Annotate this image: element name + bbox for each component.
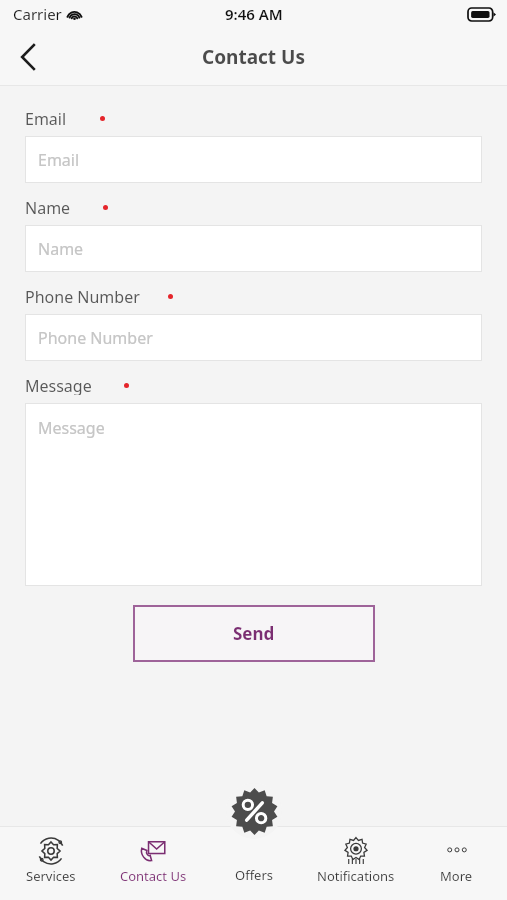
button[interactable]: Services <box>0 837 102 900</box>
button[interactable]: Back <box>0 29 56 85</box>
staticText: Message <box>25 375 92 395</box>
button[interactable]: Message <box>25 403 482 586</box>
staticText: Name <box>25 197 71 217</box>
staticText: Name <box>38 238 84 260</box>
button[interactable]: More <box>406 837 507 900</box>
staticText: Offers <box>235 866 274 884</box>
staticText: Message <box>38 417 105 439</box>
button[interactable]: Phone Number <box>25 314 482 361</box>
button[interactable]: Offers <box>204 837 305 900</box>
button[interactable]: Send <box>133 605 375 662</box>
staticText: Carrier <box>13 4 62 24</box>
staticText: 9:46 AM <box>225 4 283 24</box>
staticText: Email <box>25 108 67 128</box>
staticText: Phone Number <box>38 327 153 349</box>
staticText: More <box>440 867 473 885</box>
button[interactable]: Email <box>25 136 482 183</box>
staticText: Phone Number <box>25 286 140 306</box>
button[interactable]: Contact Us <box>102 837 204 900</box>
button[interactable]: Notifications <box>305 837 406 900</box>
staticText: Send <box>233 622 275 645</box>
staticText: Notifications <box>317 867 395 885</box>
button[interactable]: Offers <box>226 783 282 839</box>
staticText: Contact Us <box>120 867 187 885</box>
button[interactable]: Name <box>25 225 482 272</box>
staticText: Email <box>38 149 80 171</box>
staticText: Services <box>26 867 76 885</box>
staticText: Contact Us <box>202 44 305 70</box>
